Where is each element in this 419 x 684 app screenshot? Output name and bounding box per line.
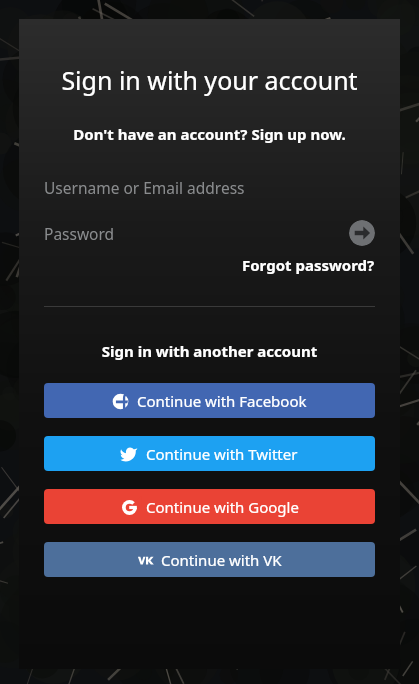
button[interactable]: Password: [44, 217, 375, 249]
staticText: Continue with Google: [146, 497, 299, 517]
staticText: Don't have an account? Sign up now.: [19, 124, 400, 144]
button[interactable]: Continue with Twitter: [44, 436, 375, 471]
staticText: Continue with Facebook: [137, 391, 307, 411]
button[interactable]: Forgot password?: [242, 255, 375, 275]
button[interactable]: Don't have an account? Sign up now.: [19, 124, 400, 144]
staticText: Sign in with your account: [19, 63, 400, 97]
staticText: Sign in with another account: [19, 341, 400, 361]
staticText: Password: [44, 223, 115, 244]
button[interactable]: Continue with Facebook: [44, 383, 375, 418]
staticText: Continue with Twitter: [146, 444, 298, 464]
staticText: Username or Email address: [44, 177, 245, 198]
button[interactable]: Continue with VK: [44, 542, 375, 577]
button[interactable]: Sign in: [349, 220, 375, 246]
button[interactable]: Continue with Google: [44, 489, 375, 524]
button[interactable]: Username or Email address: [44, 172, 375, 202]
staticText: Continue with VK: [161, 550, 282, 570]
staticText: Forgot password?: [242, 255, 375, 275]
